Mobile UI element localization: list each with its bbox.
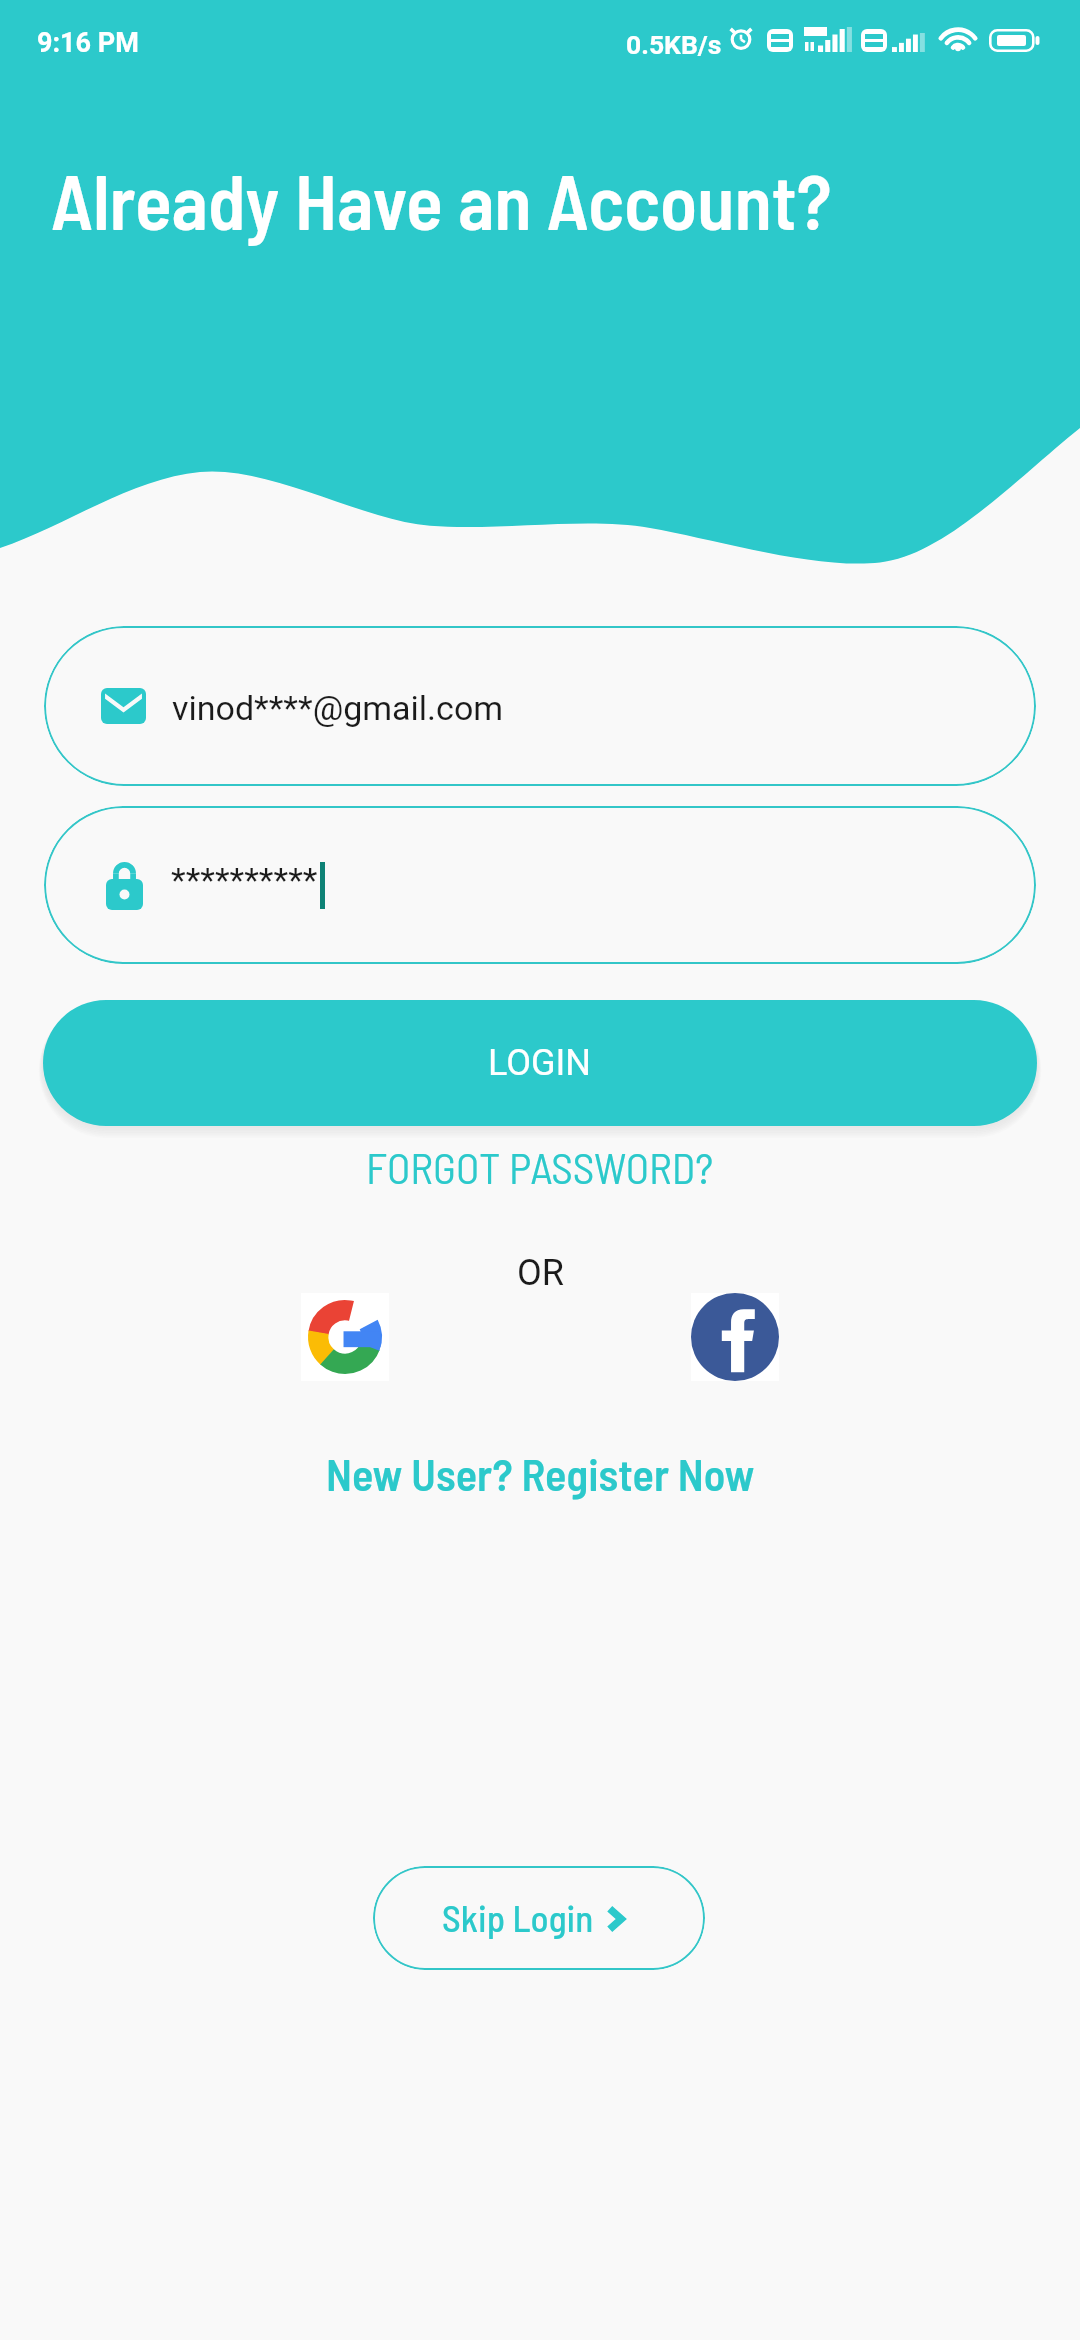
- button[interactable]: **********: [44, 806, 1036, 964]
- button[interactable]: FORGOT PASSWORD?: [366, 1141, 714, 1193]
- button[interactable]: Sign in with Facebook: [691, 1293, 779, 1381]
- staticText: OR: [517, 1252, 564, 1294]
- button[interactable]: LOGIN: [43, 1000, 1037, 1126]
- staticText: LOGIN: [488, 1042, 592, 1084]
- button[interactable]: Skip Login: [373, 1866, 705, 1970]
- button[interactable]: vinod****@gmail.com: [44, 626, 1036, 786]
- button[interactable]: New User? Register Now: [326, 1447, 755, 1500]
- button[interactable]: Sign in with Google: [301, 1293, 389, 1381]
- staticText: 9:16 PM: [37, 27, 139, 59]
- staticText: **********: [171, 860, 318, 900]
- staticText: vinod****@gmail.com: [172, 688, 504, 728]
- staticText: 0.5KB/s: [626, 29, 722, 60]
- staticText: Already Have an Account?: [51, 154, 832, 245]
- staticText: Skip Login: [442, 1895, 594, 1939]
